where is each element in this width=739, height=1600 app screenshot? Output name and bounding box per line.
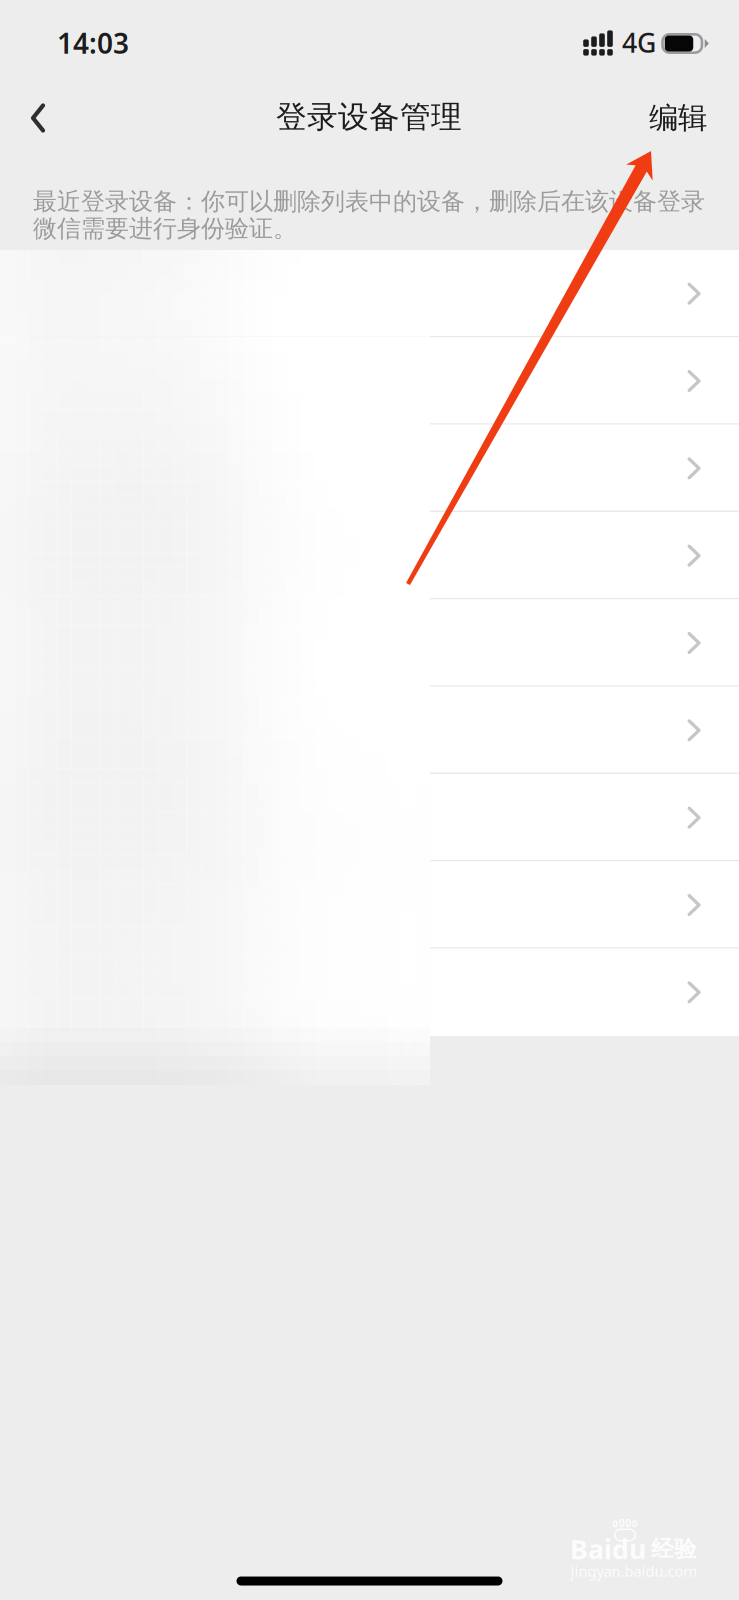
button[interactable]: Device: [0, 599, 739, 687]
staticText: jingyan.baidu.com: [570, 1561, 697, 1581]
button[interactable]: Device: [0, 774, 739, 861]
button[interactable]: Device: [0, 861, 739, 949]
staticText: 最近登录设备：你可以删除列表中的设备，删除后在该设备登录: [33, 187, 705, 216]
staticText: 编辑: [649, 100, 707, 136]
button[interactable]: Device: [0, 687, 739, 774]
button[interactable]: 编辑: [616, 74, 739, 162]
button[interactable]: Device: [0, 512, 739, 599]
staticText: 微信需要进行身份验证。: [33, 214, 297, 243]
button[interactable]: Device: [0, 425, 739, 512]
staticText: Baidu: [570, 1531, 646, 1567]
staticText: 登录设备管理: [276, 98, 462, 136]
button[interactable]: Back: [0, 74, 76, 162]
staticText: 4G: [622, 25, 656, 60]
button[interactable]: Device: [0, 337, 739, 425]
button[interactable]: Device: [0, 250, 739, 337]
button[interactable]: Device: [0, 949, 739, 1036]
staticText: 14:03: [57, 24, 129, 62]
staticText: 经验: [651, 1535, 697, 1563]
